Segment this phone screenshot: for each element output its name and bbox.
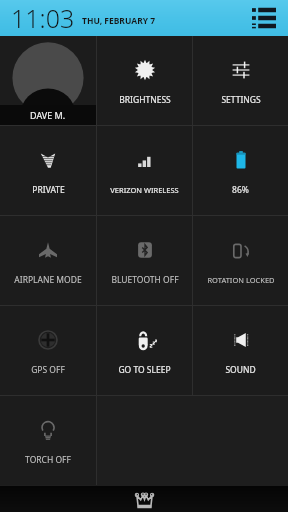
button[interactable]: ROTATION LOCKED [193, 216, 288, 305]
staticText: SETTINGS [221, 94, 261, 106]
button[interactable]: 86% [193, 126, 288, 215]
staticText: GPS OFF [31, 364, 65, 376]
button[interactable]: AIRPLANE MODE [0, 216, 96, 305]
button[interactable]: DAVE M. [0, 36, 96, 125]
staticText: 86% [232, 184, 249, 196]
button[interactable]: GPS OFF [0, 306, 96, 395]
button[interactable]: SETTINGS [193, 36, 288, 125]
staticText: 11:03 [11, 1, 75, 35]
staticText: GO TO SLEEP [118, 364, 171, 376]
staticText: TORCH OFF [25, 454, 71, 466]
button[interactable]: BRIGHTNESS [97, 36, 192, 125]
button[interactable]: GO TO SLEEP [97, 306, 192, 395]
staticText: SOUND [225, 364, 256, 376]
staticText: DAVE M. [30, 109, 66, 121]
staticText: PRIVATE [32, 184, 65, 196]
staticText: ROTATION LOCKED [207, 275, 275, 285]
staticText: BRIGHTNESS [119, 94, 171, 106]
button[interactable]: VERIZON WIRELESS [97, 126, 192, 215]
staticText: THU, FEBRUARY 7 [82, 15, 156, 27]
button[interactable]: PRIVATE [0, 126, 96, 215]
button[interactable]: SOUND [193, 306, 288, 395]
button[interactable]: TORCH OFF [0, 396, 96, 485]
staticText: AIRPLANE MODE [14, 274, 82, 286]
staticText: BLUETOOTH OFF [111, 274, 179, 286]
staticText: VERIZON WIRELESS [110, 185, 179, 195]
button[interactable]: Home [127, 486, 161, 512]
button[interactable]: BLUETOOTH OFF [97, 216, 192, 305]
button[interactable]: Quick settings list [248, 2, 280, 34]
